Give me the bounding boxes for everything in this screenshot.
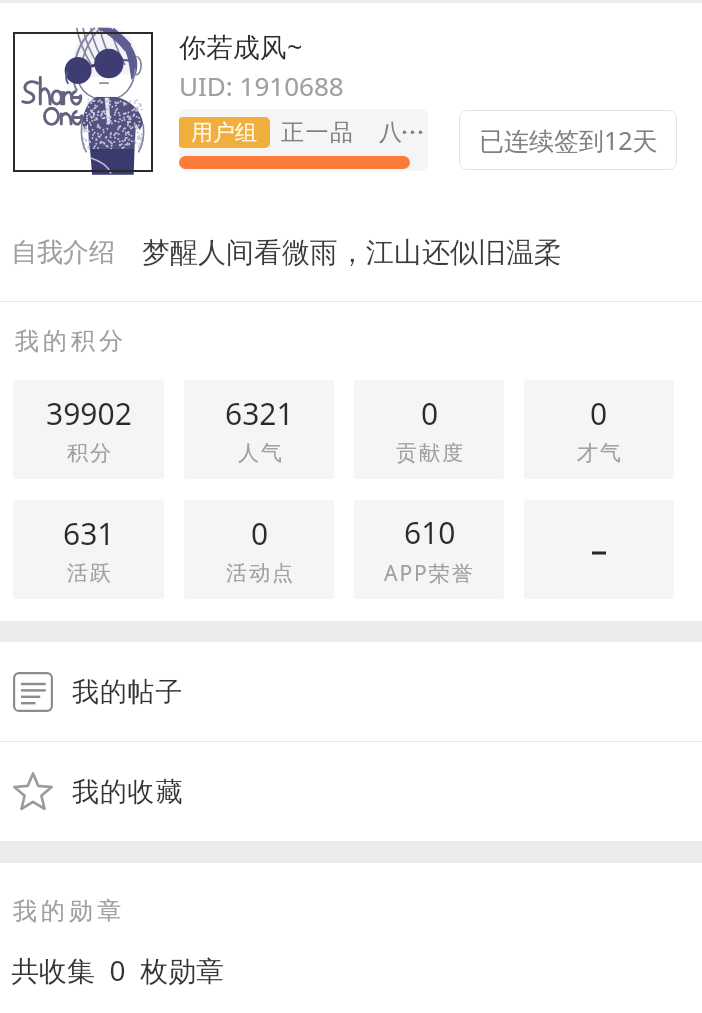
staticText: 0 <box>251 513 269 554</box>
staticText: 6321 <box>225 393 294 434</box>
staticText: 自我介绍 <box>11 236 115 269</box>
button[interactable]: Avatar <box>13 32 153 172</box>
button[interactable]: 我的帖子 <box>0 642 702 741</box>
staticText: 你若成风~ <box>179 28 303 65</box>
staticText: UID: 1910688 <box>179 68 344 103</box>
staticText: 活动点 <box>225 560 294 586</box>
staticText: 已连续签到12天 <box>479 123 658 157</box>
staticText: 我的勋章 <box>11 896 123 926</box>
button[interactable] <box>524 500 674 599</box>
staticText: 用户组 <box>191 119 257 147</box>
button[interactable]: 0 <box>184 500 334 599</box>
staticText: 共收集 0 枚勋章 <box>11 951 225 989</box>
staticText: 0 <box>421 393 439 434</box>
button[interactable]: 631 <box>13 500 164 599</box>
button[interactable]: 0 <box>354 380 504 479</box>
button[interactable]: 6321 <box>184 380 334 479</box>
button[interactable]: 共收集 0 枚勋章 <box>11 951 225 989</box>
staticText: 积分 <box>66 440 112 466</box>
staticText: 631 <box>63 513 115 554</box>
staticText: 正一品 <box>281 118 355 147</box>
staticText: 0 <box>590 393 608 434</box>
button[interactable]: 我的勋章 <box>11 896 123 926</box>
staticText: 我的帖子 <box>72 675 184 709</box>
button[interactable]: 610 <box>354 500 504 599</box>
button[interactable]: 自我介绍 <box>0 203 702 301</box>
staticText: 贡献度 <box>395 440 464 466</box>
button[interactable]: 用户组 <box>179 109 428 171</box>
staticText: 梦醒人间看微雨，江山还似旧温柔 <box>142 235 562 270</box>
button[interactable]: 已连续签到12天 <box>459 110 677 170</box>
staticText: APP荣誉 <box>384 559 475 588</box>
staticText: 我的收藏 <box>72 775 184 809</box>
staticText: 八 <box>379 118 404 147</box>
staticText: 39902 <box>46 393 132 434</box>
staticText: 才气 <box>576 440 622 466</box>
button[interactable]: 39902 <box>13 380 164 479</box>
staticText: 我的积分 <box>13 326 125 356</box>
button[interactable]: 0 <box>524 380 674 479</box>
staticText: 610 <box>404 512 456 553</box>
staticText: 活跃 <box>66 560 112 586</box>
staticText: 人气 <box>237 440 283 466</box>
button[interactable]: 我的收藏 <box>0 742 702 841</box>
